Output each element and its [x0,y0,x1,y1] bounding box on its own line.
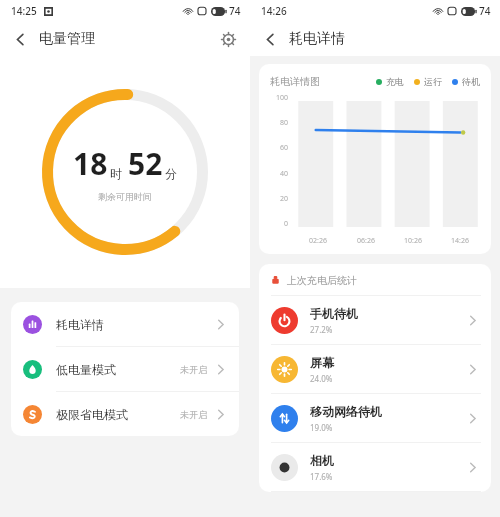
staticText: 17.6% [310,471,333,482]
staticText: 耗电详情 [56,317,104,332]
staticText: 20 [280,194,289,204]
staticText: 耗电详情图 [270,75,320,88]
staticText: 18 [73,143,108,184]
staticText: 14:25 [11,4,37,18]
staticText: 相机 [310,453,334,468]
button[interactable]: 相机 [259,443,491,491]
staticText: 屏幕 [310,355,334,370]
button[interactable]: 低电量模式 [11,347,239,391]
staticText: 未开启 [180,409,207,420]
button[interactable]: Back [260,29,280,49]
staticText: 电量管理 [39,30,95,48]
staticText: 24.0% [310,373,333,384]
staticText: 移动网络待机 [310,404,382,419]
staticText: 时 [110,166,122,181]
button[interactable]: 极限省电模式 [11,392,239,436]
staticText: 06:26 [357,236,375,246]
staticText: 手机待机 [310,306,358,321]
staticText: 14:26 [451,236,469,246]
staticText: 分 [165,166,177,181]
staticText: 100 [276,93,289,103]
button[interactable]: 屏幕 [259,345,491,393]
staticText: 10:26 [404,236,422,246]
staticText: 剩余可用时间 [98,191,152,202]
staticText: 74 [479,4,491,18]
staticText: 耗电详情 [289,30,345,48]
staticText: 14:26 [261,4,287,18]
staticText: 02:26 [309,236,327,246]
button[interactable]: 手机待机 [259,296,491,344]
button[interactable]: Settings [218,29,238,49]
staticText: 60 [280,143,289,153]
staticText: 52 [128,143,163,184]
staticText: 低电量模式 [56,362,116,377]
staticText: 上次充电后统计 [287,274,357,287]
staticText: 27.2% [310,324,333,335]
staticText: 极限省电模式 [56,407,128,422]
staticText: 0 [284,219,289,229]
staticText: 19.0% [310,422,333,433]
staticText: 待机 [462,76,480,87]
staticText: 74 [229,4,241,18]
button[interactable]: Back [10,29,30,49]
staticText: 运行 [424,76,442,87]
button[interactable]: 耗电详情 [11,302,239,346]
staticText: 40 [280,169,289,179]
staticText: 未开启 [180,364,207,375]
staticText: 充电 [386,76,404,87]
button[interactable]: 移动网络待机 [259,394,491,442]
staticText: 80 [280,118,289,128]
